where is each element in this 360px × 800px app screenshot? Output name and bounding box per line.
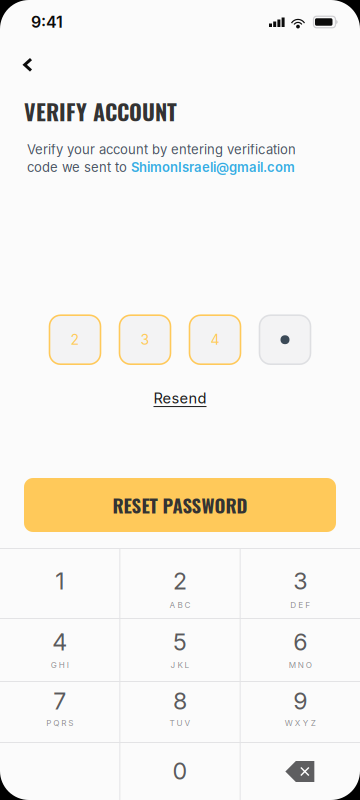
button[interactable]: 4 bbox=[0, 619, 119, 681]
staticText: 2 bbox=[173, 567, 187, 595]
staticText: 9:41 bbox=[31, 12, 63, 32]
staticText: 7 bbox=[53, 687, 66, 715]
button[interactable]: Code digit 4 bbox=[189, 315, 240, 364]
staticText: D E F bbox=[290, 600, 310, 610]
button[interactable]: 7 bbox=[0, 682, 119, 742]
button[interactable]: 1 bbox=[0, 549, 119, 618]
button[interactable]: 9 bbox=[241, 682, 360, 742]
button[interactable]: Back bbox=[11, 48, 45, 82]
button[interactable]: RESET PASSWORD bbox=[24, 478, 336, 532]
staticText: 3 bbox=[293, 567, 307, 595]
staticText: Resend bbox=[153, 389, 206, 407]
staticText: 5 bbox=[173, 628, 187, 656]
staticText: G H I bbox=[51, 660, 69, 670]
button[interactable]: Delete bbox=[241, 743, 360, 800]
staticText: P Q R S bbox=[46, 718, 73, 728]
staticText: A B C bbox=[169, 600, 190, 610]
button[interactable]: 5 bbox=[120, 619, 240, 681]
button[interactable]: Resend bbox=[143, 384, 216, 412]
button[interactable]: 3 bbox=[241, 549, 360, 618]
staticText: 6 bbox=[293, 628, 307, 656]
staticText: code we sent to bbox=[27, 159, 131, 175]
button[interactable]: Code digit 2 bbox=[49, 315, 100, 364]
staticText: 4 bbox=[210, 331, 219, 348]
staticText: 0 bbox=[172, 757, 187, 785]
button[interactable]: 6 bbox=[241, 619, 360, 681]
staticText: 9 bbox=[293, 687, 307, 715]
button[interactable]: Blank bbox=[0, 743, 119, 800]
staticText: T U V bbox=[169, 718, 190, 728]
staticText: 8 bbox=[173, 687, 187, 715]
button[interactable]: 8 bbox=[120, 682, 240, 742]
staticText: ShimonIsraeli@gmail.com bbox=[131, 159, 295, 175]
staticText: Verify your account by entering verifica… bbox=[27, 142, 296, 157]
staticText: VERIFY ACCOUNT bbox=[24, 95, 177, 128]
staticText: J K L bbox=[170, 660, 189, 670]
staticText: 2 bbox=[70, 331, 79, 348]
button[interactable]: 2 bbox=[120, 549, 240, 618]
button[interactable]: Code digit filled bbox=[259, 315, 310, 364]
button[interactable]: 0 bbox=[120, 743, 240, 800]
staticText: M N O bbox=[289, 660, 312, 670]
staticText: RESET PASSWORD bbox=[112, 491, 247, 519]
staticText: 4 bbox=[52, 628, 67, 656]
button[interactable]: Code digit 3 bbox=[119, 315, 170, 364]
staticText: 1 bbox=[55, 567, 64, 595]
staticText: W X Y Z bbox=[285, 718, 316, 728]
staticText: 3 bbox=[140, 331, 149, 348]
